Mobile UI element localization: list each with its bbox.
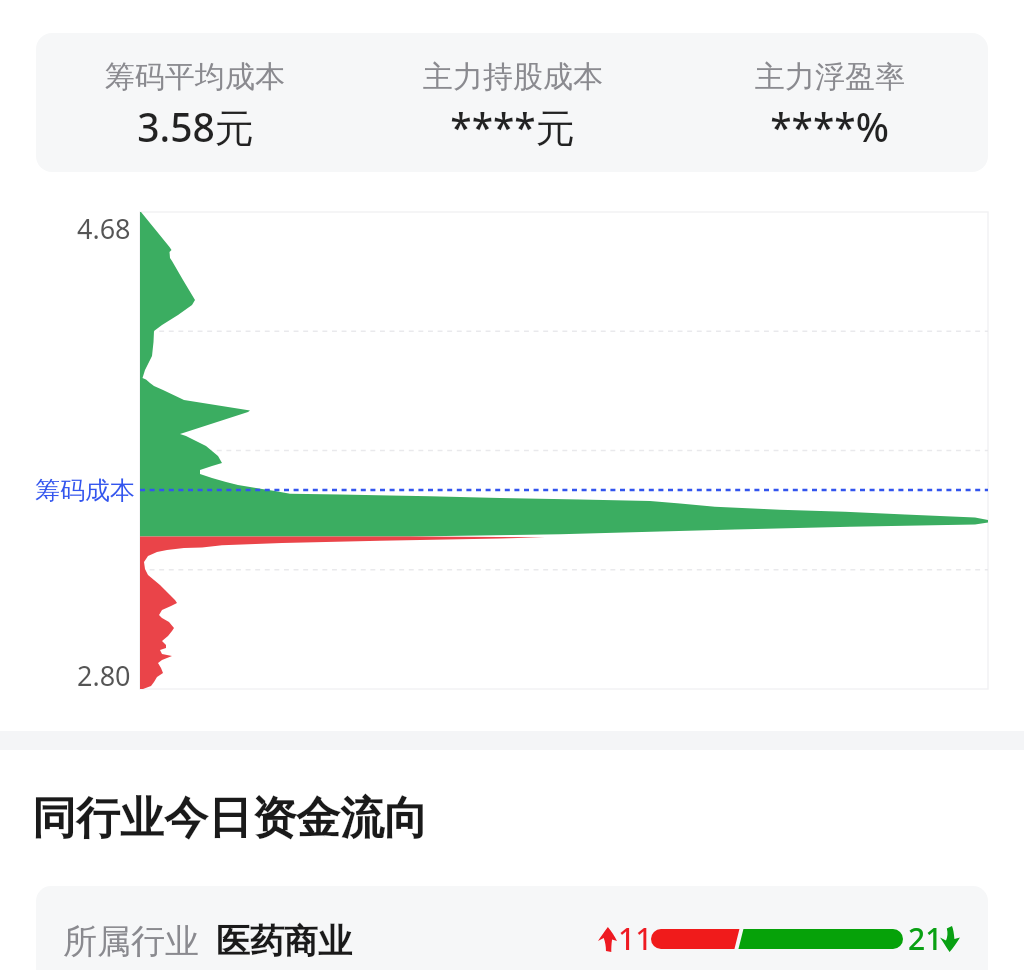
staticText: 2.80 [77, 657, 131, 694]
button[interactable]: 筹码平均成本 [36, 33, 988, 172]
staticText: 所属行业 [63, 920, 199, 963]
staticText: 筹码成本 [35, 475, 135, 506]
staticText: 主力浮盈率 [755, 58, 905, 96]
staticText: 11 [618, 918, 653, 959]
staticText: 主力持股成本 [423, 58, 603, 96]
staticText: 同行业今日资金流向 [32, 791, 428, 846]
staticText: ****% [770, 100, 889, 153]
staticText: 3.58元 [137, 100, 254, 153]
staticText: 4.68 [77, 210, 131, 247]
button[interactable]: 筹码分布图 [140, 212, 988, 689]
staticText: ****元 [450, 100, 575, 153]
staticText: 筹码平均成本 [105, 58, 285, 96]
staticText: 医药商业 [216, 920, 352, 963]
button[interactable]: 所属行业 [36, 886, 988, 970]
staticText: 21 [908, 918, 943, 959]
